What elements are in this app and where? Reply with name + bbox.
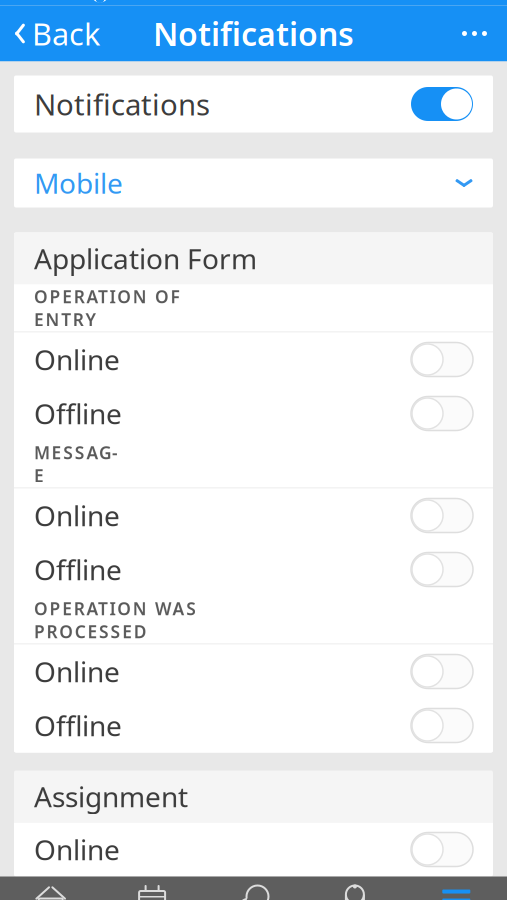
staticText: Online <box>34 341 120 378</box>
button[interactable]: Messages <box>203 876 304 900</box>
button[interactable]: Online <box>14 822 493 876</box>
button[interactable]: Back <box>0 5 114 61</box>
button[interactable]: Online <box>14 644 493 698</box>
button[interactable]: Offline <box>14 386 493 440</box>
staticText: Mobile <box>34 164 123 202</box>
button[interactable]: Mobile <box>14 158 493 207</box>
staticText: Back <box>32 13 100 54</box>
staticText: OPERATION WAS PROCESSED <box>34 597 196 643</box>
staticText: Notifications <box>34 84 210 123</box>
button[interactable]: Offline <box>14 698 493 752</box>
button[interactable]: Menu <box>406 876 507 900</box>
button[interactable]: More options <box>442 5 507 61</box>
button[interactable]: Calendar <box>101 876 203 900</box>
staticText: Online <box>34 831 120 868</box>
staticText: OPERATION OF ENTRY <box>34 285 180 331</box>
button[interactable]: Notifications <box>14 75 493 132</box>
staticText: Application Form <box>34 240 257 277</box>
staticText: Notifications <box>153 12 354 55</box>
button[interactable]: Notifications <box>304 876 406 900</box>
staticText: Offline <box>34 551 122 588</box>
staticText: Online <box>34 497 120 534</box>
button[interactable]: Home <box>0 876 101 900</box>
button[interactable]: Online <box>14 332 493 386</box>
button[interactable]: Offline <box>14 542 493 596</box>
staticText: MESSAGE <box>34 441 118 487</box>
staticText: Offline <box>34 707 122 744</box>
staticText: Assignment <box>34 778 188 815</box>
staticText: Online <box>34 653 120 690</box>
staticText: Offline <box>34 395 122 432</box>
button[interactable]: Online <box>14 488 493 542</box>
